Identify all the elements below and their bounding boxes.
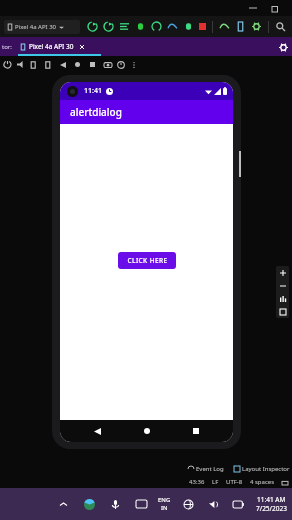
button[interactable]: CLICK HERE [118, 252, 176, 269]
button[interactable]: Minimize [242, 0, 264, 16]
button[interactable]: Back [56, 58, 69, 71]
staticText: UTF-8 [226, 478, 243, 486]
staticText: IN [161, 504, 168, 512]
button[interactable]: 11:41 AM [256, 495, 287, 513]
button[interactable]: Fit to window [276, 305, 289, 318]
staticText: Event Log [196, 465, 224, 473]
button[interactable]: Recent apps [183, 420, 209, 442]
button[interactable]: Layout Inspector [234, 465, 290, 473]
button[interactable]: Home [134, 420, 160, 442]
button[interactable]: Rotate right [40, 58, 53, 71]
button[interactable]: Run [87, 21, 98, 32]
button[interactable]: Restore window [264, 0, 286, 16]
button[interactable]: Screenshot [101, 58, 114, 71]
button[interactable]: Record [114, 58, 127, 71]
button[interactable]: Apply changes [183, 21, 194, 32]
button[interactable]: Profile [119, 21, 130, 32]
staticText: CLICK HERE [127, 256, 168, 265]
button[interactable]: Battery [230, 496, 246, 512]
button[interactable]: Back [84, 420, 110, 442]
staticText: 7/25/2023 [256, 504, 287, 513]
button[interactable]: Show hidden icons [55, 496, 71, 512]
button[interactable]: Pixel 4a API 30 [4, 20, 80, 34]
staticText: 11:41 AM [257, 495, 286, 504]
button[interactable]: SDK Manager [219, 21, 230, 32]
button[interactable]: Emulator settings [276, 40, 290, 54]
staticText: alertdialog [70, 105, 122, 119]
staticText: 11:41 [84, 86, 102, 96]
button[interactable]: Network [180, 496, 196, 512]
button[interactable]: Keyboard [133, 496, 149, 512]
button[interactable]: Zoom out [276, 279, 289, 292]
button[interactable]: Zoom in [276, 266, 289, 279]
button[interactable]: Home [71, 58, 84, 71]
staticText: 4 spaces [250, 478, 275, 486]
staticText: tor: [2, 43, 12, 51]
button[interactable]: Close tab [78, 43, 85, 50]
button[interactable]: Pixel 4a API 30 [20, 37, 85, 56]
button[interactable]: Volume up [14, 58, 27, 71]
button[interactable]: Microphone [107, 496, 123, 512]
staticText: Pixel 4a API 30 [29, 42, 74, 51]
button[interactable]: Search [275, 21, 286, 32]
button[interactable]: Browser [81, 496, 97, 512]
button[interactable]: Zoom to actual size [276, 292, 289, 305]
button[interactable]: Step [151, 21, 162, 32]
button[interactable]: Overview [86, 58, 99, 71]
button[interactable]: Lock [281, 478, 289, 486]
button[interactable]: Volume [205, 496, 221, 512]
staticText: Layout Inspector [242, 465, 290, 473]
button[interactable]: Sync [251, 21, 262, 32]
button[interactable]: AVD Manager [235, 21, 246, 32]
button[interactable]: More [127, 58, 140, 71]
button[interactable]: Rotate left [27, 58, 40, 71]
button[interactable]: Trace [167, 21, 178, 32]
staticText: Pixel 4a API 30 [15, 23, 57, 31]
button[interactable]: Event Log [188, 465, 224, 473]
staticText: ENG [158, 496, 171, 504]
button[interactable]: Power [1, 58, 14, 71]
button[interactable]: Attach [135, 21, 146, 32]
button[interactable]: Debug [103, 21, 114, 32]
staticText: 43:36 [189, 478, 205, 486]
staticText: LF [212, 478, 219, 486]
